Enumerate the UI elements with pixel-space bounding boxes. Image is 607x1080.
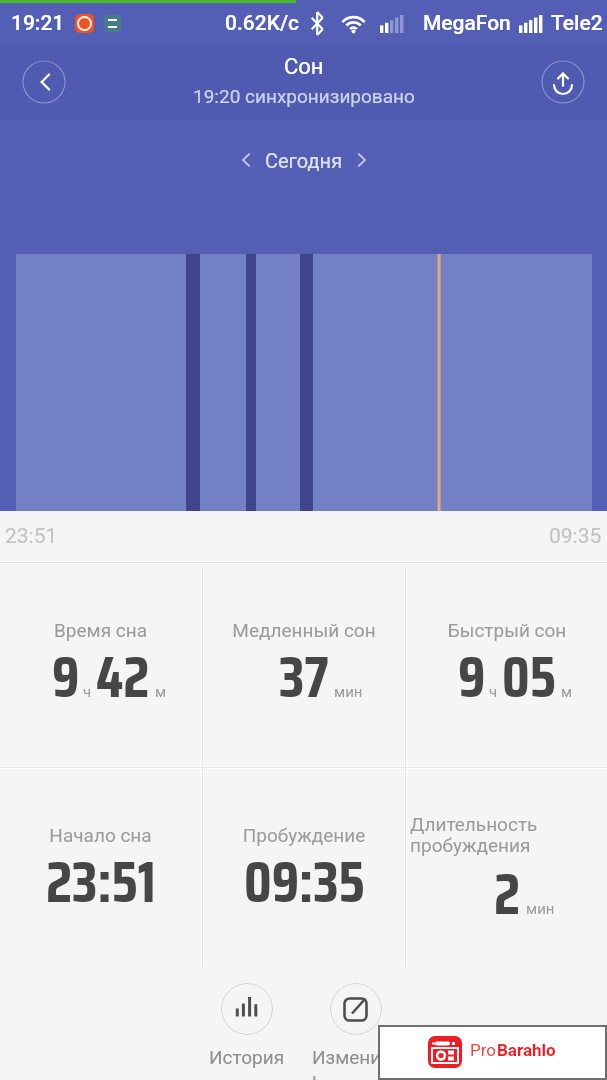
button[interactable]: Сегодня	[263, 149, 345, 172]
staticText: м	[561, 683, 573, 701]
staticText: Barahlo	[497, 1040, 556, 1060]
button[interactable]: Начало сна	[0, 769, 201, 967]
button[interactable]: Длительность пробуждения	[407, 769, 607, 967]
staticText: Сон	[284, 54, 324, 80]
staticText: Начало сна	[3, 824, 198, 846]
staticText: 0.62K/c	[225, 11, 300, 36]
button[interactable]: Время сна	[0, 564, 201, 766]
staticText: MegaFon	[423, 11, 511, 36]
staticText: мин	[334, 683, 363, 701]
staticText: Tele2	[551, 11, 603, 36]
staticText: 09:35	[244, 836, 365, 927]
staticText: 9	[52, 631, 80, 722]
staticText: м	[155, 683, 167, 701]
staticText: 2	[494, 848, 521, 939]
other: Edit	[330, 983, 382, 1035]
staticText: Длительность пробуждения	[410, 813, 604, 857]
staticText: Время сна	[3, 619, 198, 641]
button[interactable]: Edit	[312, 983, 400, 1080]
staticText: Сегодня	[265, 149, 343, 172]
staticText: Быстрый сон	[410, 619, 604, 641]
staticText: Медленный сон	[207, 619, 401, 641]
button[interactable]: Back	[22, 60, 66, 104]
staticText: 23:51	[46, 836, 156, 927]
button[interactable]: Share	[541, 60, 585, 104]
staticText: 09:35	[549, 524, 602, 549]
staticText: 23:51	[5, 524, 58, 549]
staticText: 19:21	[11, 11, 65, 36]
staticText: 05	[502, 631, 556, 722]
staticText: 9	[458, 631, 486, 722]
staticText: ч	[489, 683, 498, 701]
staticText: 37	[279, 631, 329, 722]
staticText: ч	[83, 683, 92, 701]
button[interactable]: Медленный сон	[204, 564, 404, 766]
staticText: Изменить	[312, 1046, 400, 1080]
staticText: Пробуждение	[207, 824, 401, 846]
button[interactable]: Sleep history	[203, 983, 291, 1068]
staticText: Pro	[470, 1040, 497, 1060]
staticText: 42	[96, 631, 150, 722]
button[interactable]: Previous day	[229, 143, 263, 177]
staticText: мин	[526, 900, 555, 918]
other: Sleep history	[221, 983, 273, 1035]
staticText: 19:20 синхронизировано	[193, 85, 415, 107]
button[interactable]: Быстрый сон	[407, 564, 607, 766]
button[interactable]: Next day	[345, 143, 379, 177]
staticText: История	[209, 1046, 285, 1068]
button[interactable]: Пробуждение	[204, 769, 404, 967]
